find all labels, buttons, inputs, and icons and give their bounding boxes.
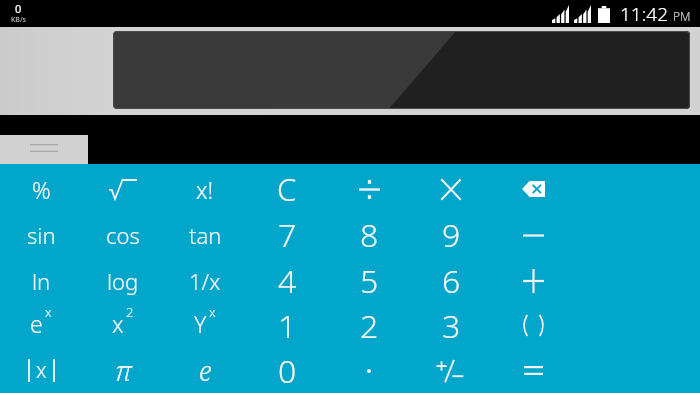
staticText: 7 [278, 213, 297, 257]
staticText: 2 [360, 304, 379, 348]
staticText: π [115, 352, 132, 389]
staticText: x [36, 356, 47, 385]
staticText: 11:42 [620, 1, 669, 27]
button[interactable]: plus [492, 258, 574, 303]
staticText: PM [673, 8, 691, 24]
button[interactable]: sine [0, 212, 82, 258]
button[interactable]: eight [328, 212, 410, 258]
button[interactable]: multiply [410, 166, 492, 212]
staticText: x [209, 303, 216, 321]
staticText: x [45, 303, 52, 321]
button[interactable]: logarithm [82, 258, 164, 303]
button[interactable]: one [246, 303, 328, 348]
staticText: 3 [442, 304, 461, 348]
button[interactable]: factorial [164, 166, 246, 212]
button[interactable]: cosine [82, 212, 164, 258]
staticText: 6 [442, 259, 461, 303]
staticText: 4 [278, 259, 297, 303]
staticText: KB/s [11, 15, 26, 25]
button[interactable]: zero [246, 348, 328, 393]
staticText: C [277, 168, 297, 210]
button[interactable]: parentheses [492, 303, 574, 348]
staticText: ln [32, 266, 51, 296]
button[interactable]: three [410, 303, 492, 348]
button[interactable]: percent [0, 166, 82, 212]
staticText: sin [27, 220, 56, 250]
button[interactable]: backspace [492, 166, 574, 212]
button[interactable]: divide [328, 166, 410, 212]
staticText: 0 [15, 1, 22, 16]
button[interactable]: nine [410, 212, 492, 258]
staticText: 5 [360, 259, 379, 303]
button[interactable]: Open history [0, 135, 88, 164]
staticText: x [112, 308, 124, 339]
button[interactable]: four [246, 258, 328, 303]
button[interactable]: decimal point [328, 348, 410, 393]
button[interactable]: natural logarithm [0, 258, 82, 303]
button[interactable]: two [328, 303, 410, 348]
staticText: e [199, 352, 212, 389]
button[interactable]: reciprocal [164, 258, 246, 303]
button[interactable]: plus minus [410, 348, 492, 393]
staticText: x! [196, 174, 214, 205]
button[interactable]: y to the power of x [164, 303, 246, 348]
button[interactable]: equals [492, 348, 574, 393]
staticText: 8 [360, 213, 379, 257]
button[interactable]: absolute value [0, 348, 82, 393]
button[interactable]: square root [82, 166, 164, 212]
staticText: 9 [442, 213, 461, 257]
button[interactable]: clear [246, 166, 328, 212]
staticText: 2 [126, 303, 134, 321]
staticText: 1/x [189, 266, 221, 296]
staticText: 1 [278, 304, 297, 348]
button[interactable]: five [328, 258, 410, 303]
staticText: 0 [278, 349, 297, 393]
staticText: Y [194, 308, 207, 339]
button[interactable]: e to the power of x [0, 303, 82, 348]
staticText: e [30, 308, 43, 339]
button[interactable]: minus [492, 212, 574, 258]
staticText: cos [106, 220, 140, 250]
button[interactable]: tangent [164, 212, 246, 258]
button[interactable]: x squared [82, 303, 164, 348]
staticText: % [32, 174, 51, 205]
button[interactable]: euler's number [164, 348, 246, 393]
staticText: tan [189, 220, 222, 250]
button[interactable]: pi [82, 348, 164, 393]
button[interactable]: seven [246, 212, 328, 258]
staticText: log [107, 266, 139, 296]
button[interactable]: six [410, 258, 492, 303]
button[interactable]: Calculator display [113, 31, 690, 109]
